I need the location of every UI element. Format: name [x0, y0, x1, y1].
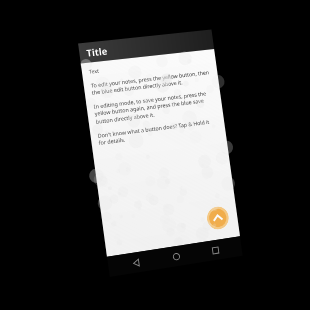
button[interactable]: Show actions [205, 205, 230, 231]
button[interactable]: Back [122, 250, 150, 275]
staticText: In editing mode, to save your notes, pre… [93, 89, 215, 126]
button[interactable]: Recent apps [201, 238, 229, 262]
staticText: Don't know what a button does? Tap & Hol… [97, 117, 218, 147]
button[interactable]: Title [78, 29, 214, 63]
staticText: To edit your notes, press the yellow but… [90, 68, 211, 97]
staticText: Text [88, 67, 99, 75]
button[interactable]: Home [162, 244, 190, 268]
staticText: Title [86, 44, 108, 60]
